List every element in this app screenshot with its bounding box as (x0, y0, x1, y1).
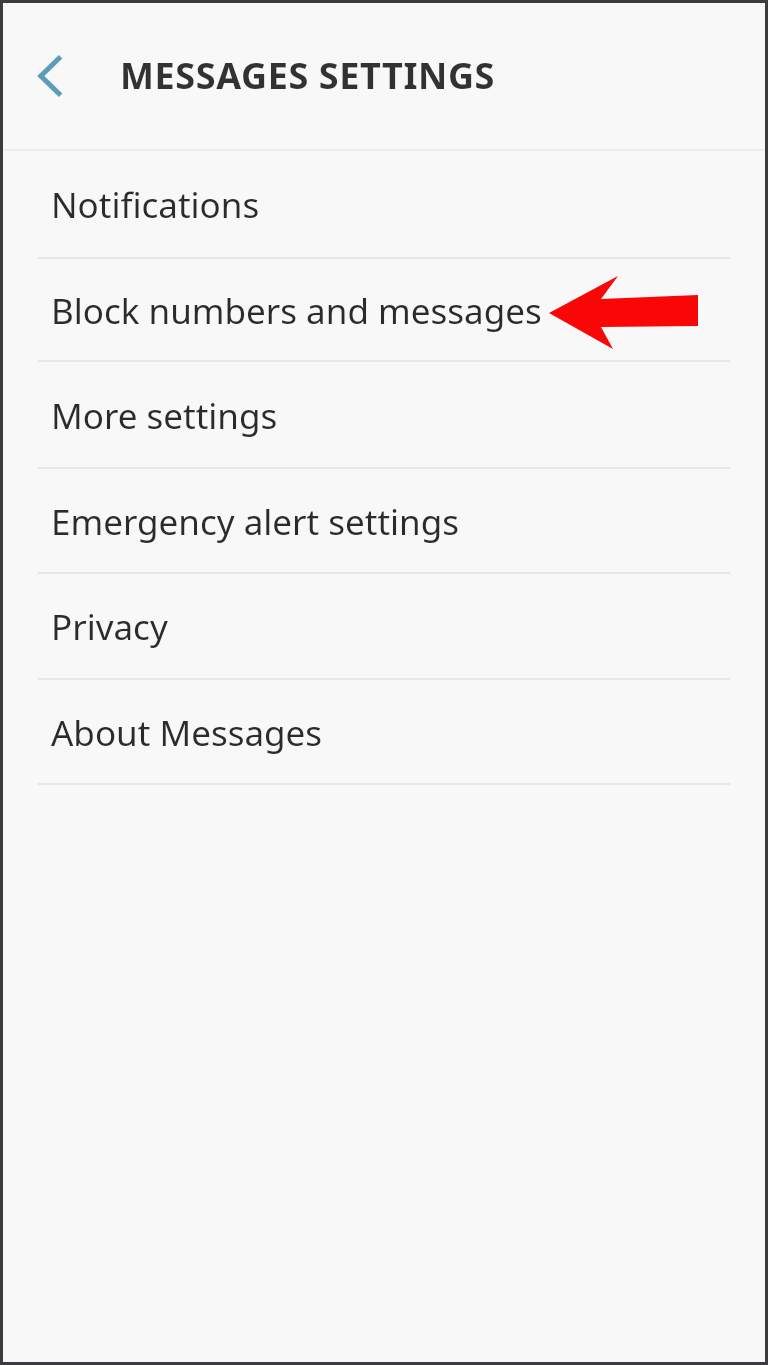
staticText: About Messages (51, 709, 323, 757)
button[interactable]: Privacy (0, 574, 768, 680)
staticText: Privacy (51, 603, 168, 651)
button[interactable]: Block numbers and messages (0, 259, 768, 362)
staticText: Notifications (51, 181, 260, 229)
button[interactable]: Emergency alert settings (0, 469, 768, 574)
staticText: MESSAGES SETTINGS (120, 51, 496, 100)
button[interactable]: About Messages (0, 680, 768, 785)
button[interactable]: More settings (0, 362, 768, 469)
button[interactable]: Notifications (0, 151, 768, 259)
staticText: More settings (51, 392, 278, 440)
staticText: Emergency alert settings (51, 498, 459, 546)
staticText: Block numbers and messages (51, 287, 542, 335)
button[interactable]: Back (18, 36, 84, 116)
